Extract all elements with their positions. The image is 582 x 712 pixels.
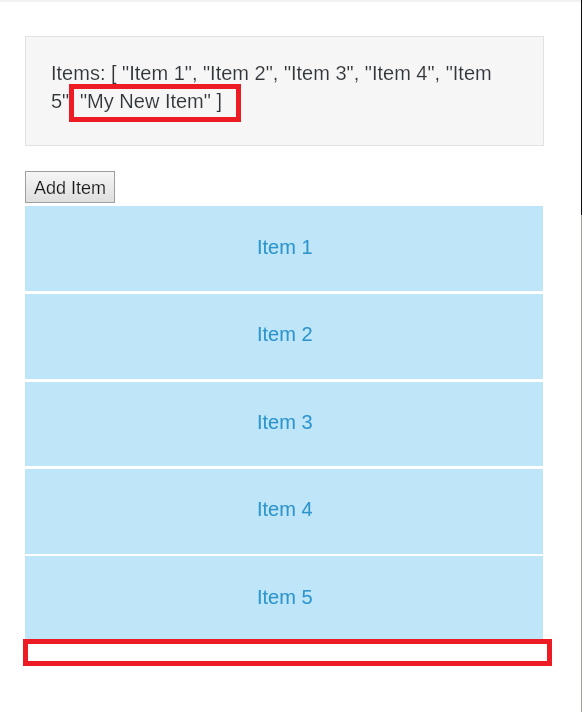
other: Scrollbar track xyxy=(581,0,582,712)
staticText: Item 5 xyxy=(257,586,313,608)
staticText: 5" xyxy=(51,90,70,112)
button[interactable]: Item 1 xyxy=(25,206,543,291)
button[interactable]: Item 5 xyxy=(25,556,543,640)
button[interactable]: Item 2 xyxy=(25,294,543,379)
staticText: Items: [ "Item 1", "Item 2", "Item 3", "… xyxy=(51,62,492,84)
button[interactable]: Item 3 xyxy=(25,382,543,466)
staticText: "My New Item" ] xyxy=(80,90,222,112)
button[interactable]: Item 4 xyxy=(25,469,543,554)
staticText: Add Item xyxy=(34,178,107,198)
staticText: Item 1 xyxy=(257,236,313,258)
button[interactable]: Add Item xyxy=(25,171,115,203)
staticText: Item 4 xyxy=(257,498,313,520)
staticText: Item 3 xyxy=(257,411,313,433)
staticText: Item 2 xyxy=(257,323,313,345)
